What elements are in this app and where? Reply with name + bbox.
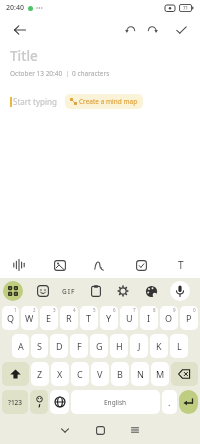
staticText: W (25, 312, 34, 324)
button[interactable] (88, 283, 104, 299)
staticText: 20:40 (6, 3, 24, 13)
button[interactable]: H (110, 334, 128, 358)
staticText: K (156, 340, 162, 352)
button[interactable] (93, 258, 107, 272)
button[interactable] (35, 283, 51, 299)
button[interactable] (50, 390, 69, 414)
staticText: I (147, 312, 151, 324)
button[interactable] (115, 283, 131, 299)
button[interactable]: K (150, 334, 168, 358)
button[interactable]: D (50, 334, 68, 358)
button[interactable]: Z (31, 362, 49, 386)
staticText: O (165, 312, 173, 324)
staticText: 7 (133, 307, 136, 313)
button[interactable]: GIF (62, 287, 76, 296)
staticText: T (86, 312, 92, 324)
button[interactable] (128, 423, 142, 437)
button[interactable]: L (170, 334, 188, 358)
staticText: H (116, 340, 123, 352)
staticText: T (178, 258, 184, 272)
button[interactable] (53, 258, 67, 272)
button[interactable]: E (40, 306, 58, 330)
staticText: 1 (14, 307, 17, 313)
button[interactable] (3, 281, 23, 301)
staticText: 6 (113, 307, 116, 313)
button[interactable]: C (71, 362, 89, 386)
staticText: A (18, 340, 24, 352)
button[interactable] (2, 362, 29, 386)
button[interactable]: ?123 (2, 390, 28, 414)
staticText: E (46, 312, 52, 324)
button[interactable]: B (111, 362, 129, 386)
button[interactable] (30, 390, 48, 414)
button[interactable] (171, 20, 191, 40)
button[interactable]: A (12, 334, 29, 358)
staticText: 2 (33, 307, 36, 313)
staticText: P (186, 312, 192, 324)
button[interactable]: P (180, 306, 198, 330)
staticText: 0 (193, 307, 196, 313)
staticText: 9 (173, 307, 176, 313)
button[interactable] (179, 390, 198, 414)
button[interactable]: T (80, 306, 98, 330)
staticText: M (156, 368, 165, 380)
button[interactable]: J (130, 334, 148, 358)
staticText: . (168, 396, 171, 408)
staticText: V (97, 368, 103, 380)
staticText: U (126, 312, 133, 324)
button[interactable]: Create a mind map (65, 94, 143, 109)
staticText: Start typing (13, 96, 57, 107)
staticText: Title (10, 47, 38, 65)
button[interactable] (171, 362, 198, 386)
staticText: Y (106, 312, 112, 324)
button[interactable]: English (71, 390, 160, 414)
staticText: English (104, 398, 127, 407)
staticText: N (137, 368, 144, 380)
staticText: Create a mind map (79, 97, 138, 106)
button[interactable]: . (162, 390, 177, 414)
button[interactable]: S (31, 334, 48, 358)
staticText: 8 (153, 307, 156, 313)
button[interactable]: X (51, 362, 69, 386)
staticText: B (117, 368, 123, 380)
button[interactable]: Q (2, 306, 19, 330)
button[interactable] (134, 258, 148, 272)
button[interactable]: I (140, 306, 158, 330)
button[interactable] (12, 258, 26, 272)
button[interactable]: U (120, 306, 138, 330)
staticText: 3 (53, 307, 56, 313)
button[interactable]: G (90, 334, 108, 358)
staticText: F (77, 340, 82, 352)
button[interactable] (12, 22, 28, 38)
button[interactable] (143, 283, 159, 299)
button[interactable] (58, 423, 72, 437)
button[interactable]: F (70, 334, 88, 358)
button[interactable]: N (131, 362, 149, 386)
button[interactable] (120, 20, 140, 40)
staticText: 0 characters (72, 69, 110, 78)
staticText: Z (37, 368, 43, 380)
staticText: D (56, 340, 63, 352)
button[interactable]: T (174, 258, 188, 272)
staticText: 5 (93, 307, 96, 313)
button[interactable]: M (151, 362, 169, 386)
staticText: C (77, 368, 83, 380)
staticText: J (138, 340, 141, 352)
staticText: 4 (73, 307, 76, 313)
button[interactable]: O (160, 306, 178, 330)
button[interactable] (93, 423, 107, 437)
button[interactable] (170, 281, 190, 301)
button[interactable] (142, 20, 162, 40)
button[interactable]: R (60, 306, 78, 330)
staticText: ?123 (8, 398, 23, 407)
button[interactable]: V (91, 362, 109, 386)
button[interactable]: Y (100, 306, 118, 330)
staticText: G (96, 340, 103, 352)
staticText: October 13 20:40 (10, 69, 63, 78)
staticText: S (37, 340, 42, 352)
staticText: Q (7, 312, 15, 324)
staticText: X (57, 368, 63, 380)
staticText: 71 (183, 5, 189, 11)
button[interactable]: W (21, 306, 38, 330)
staticText: L (177, 340, 182, 352)
